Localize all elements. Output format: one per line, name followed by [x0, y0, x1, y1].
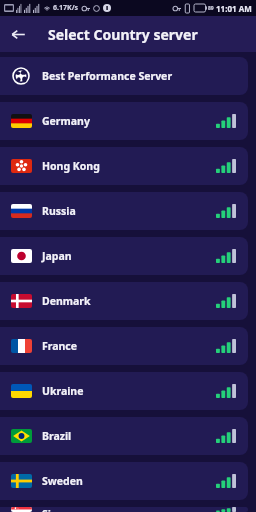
staticText: 11:01 AM: [216, 3, 252, 14]
staticText: Denmark: [42, 294, 91, 308]
staticText: Germany: [42, 114, 90, 128]
staticText: Select Country server: [48, 25, 198, 44]
staticText: Singapore: [42, 507, 95, 512]
button[interactable]: Ukraine: [0, 372, 248, 410]
staticText: Ukraine: [42, 384, 84, 398]
staticText: France: [42, 339, 78, 353]
button[interactable]: Japan: [0, 237, 248, 275]
button[interactable]: Denmark: [0, 282, 248, 320]
staticText: Sweden: [42, 474, 83, 488]
staticText: 89: [208, 5, 214, 12]
button[interactable]: Russia: [0, 192, 248, 230]
button[interactable]: Hong Kong: [0, 147, 248, 185]
staticText: Japan: [42, 249, 72, 263]
staticText: Russia: [42, 204, 76, 218]
button[interactable]: Back: [0, 16, 36, 52]
button[interactable]: France: [0, 327, 248, 365]
staticText: Brazil: [42, 429, 72, 443]
staticText: 6.17K/s: [53, 3, 79, 13]
staticText: Hong Kong: [42, 159, 100, 173]
staticText: Best Performance Server: [42, 69, 173, 83]
button[interactable]: Brazil: [0, 417, 248, 455]
button[interactable]: Singapore: [0, 507, 248, 512]
button[interactable]: Germany: [0, 102, 248, 140]
button[interactable]: Best Performance Server: [0, 57, 248, 95]
button[interactable]: Sweden: [0, 462, 248, 500]
